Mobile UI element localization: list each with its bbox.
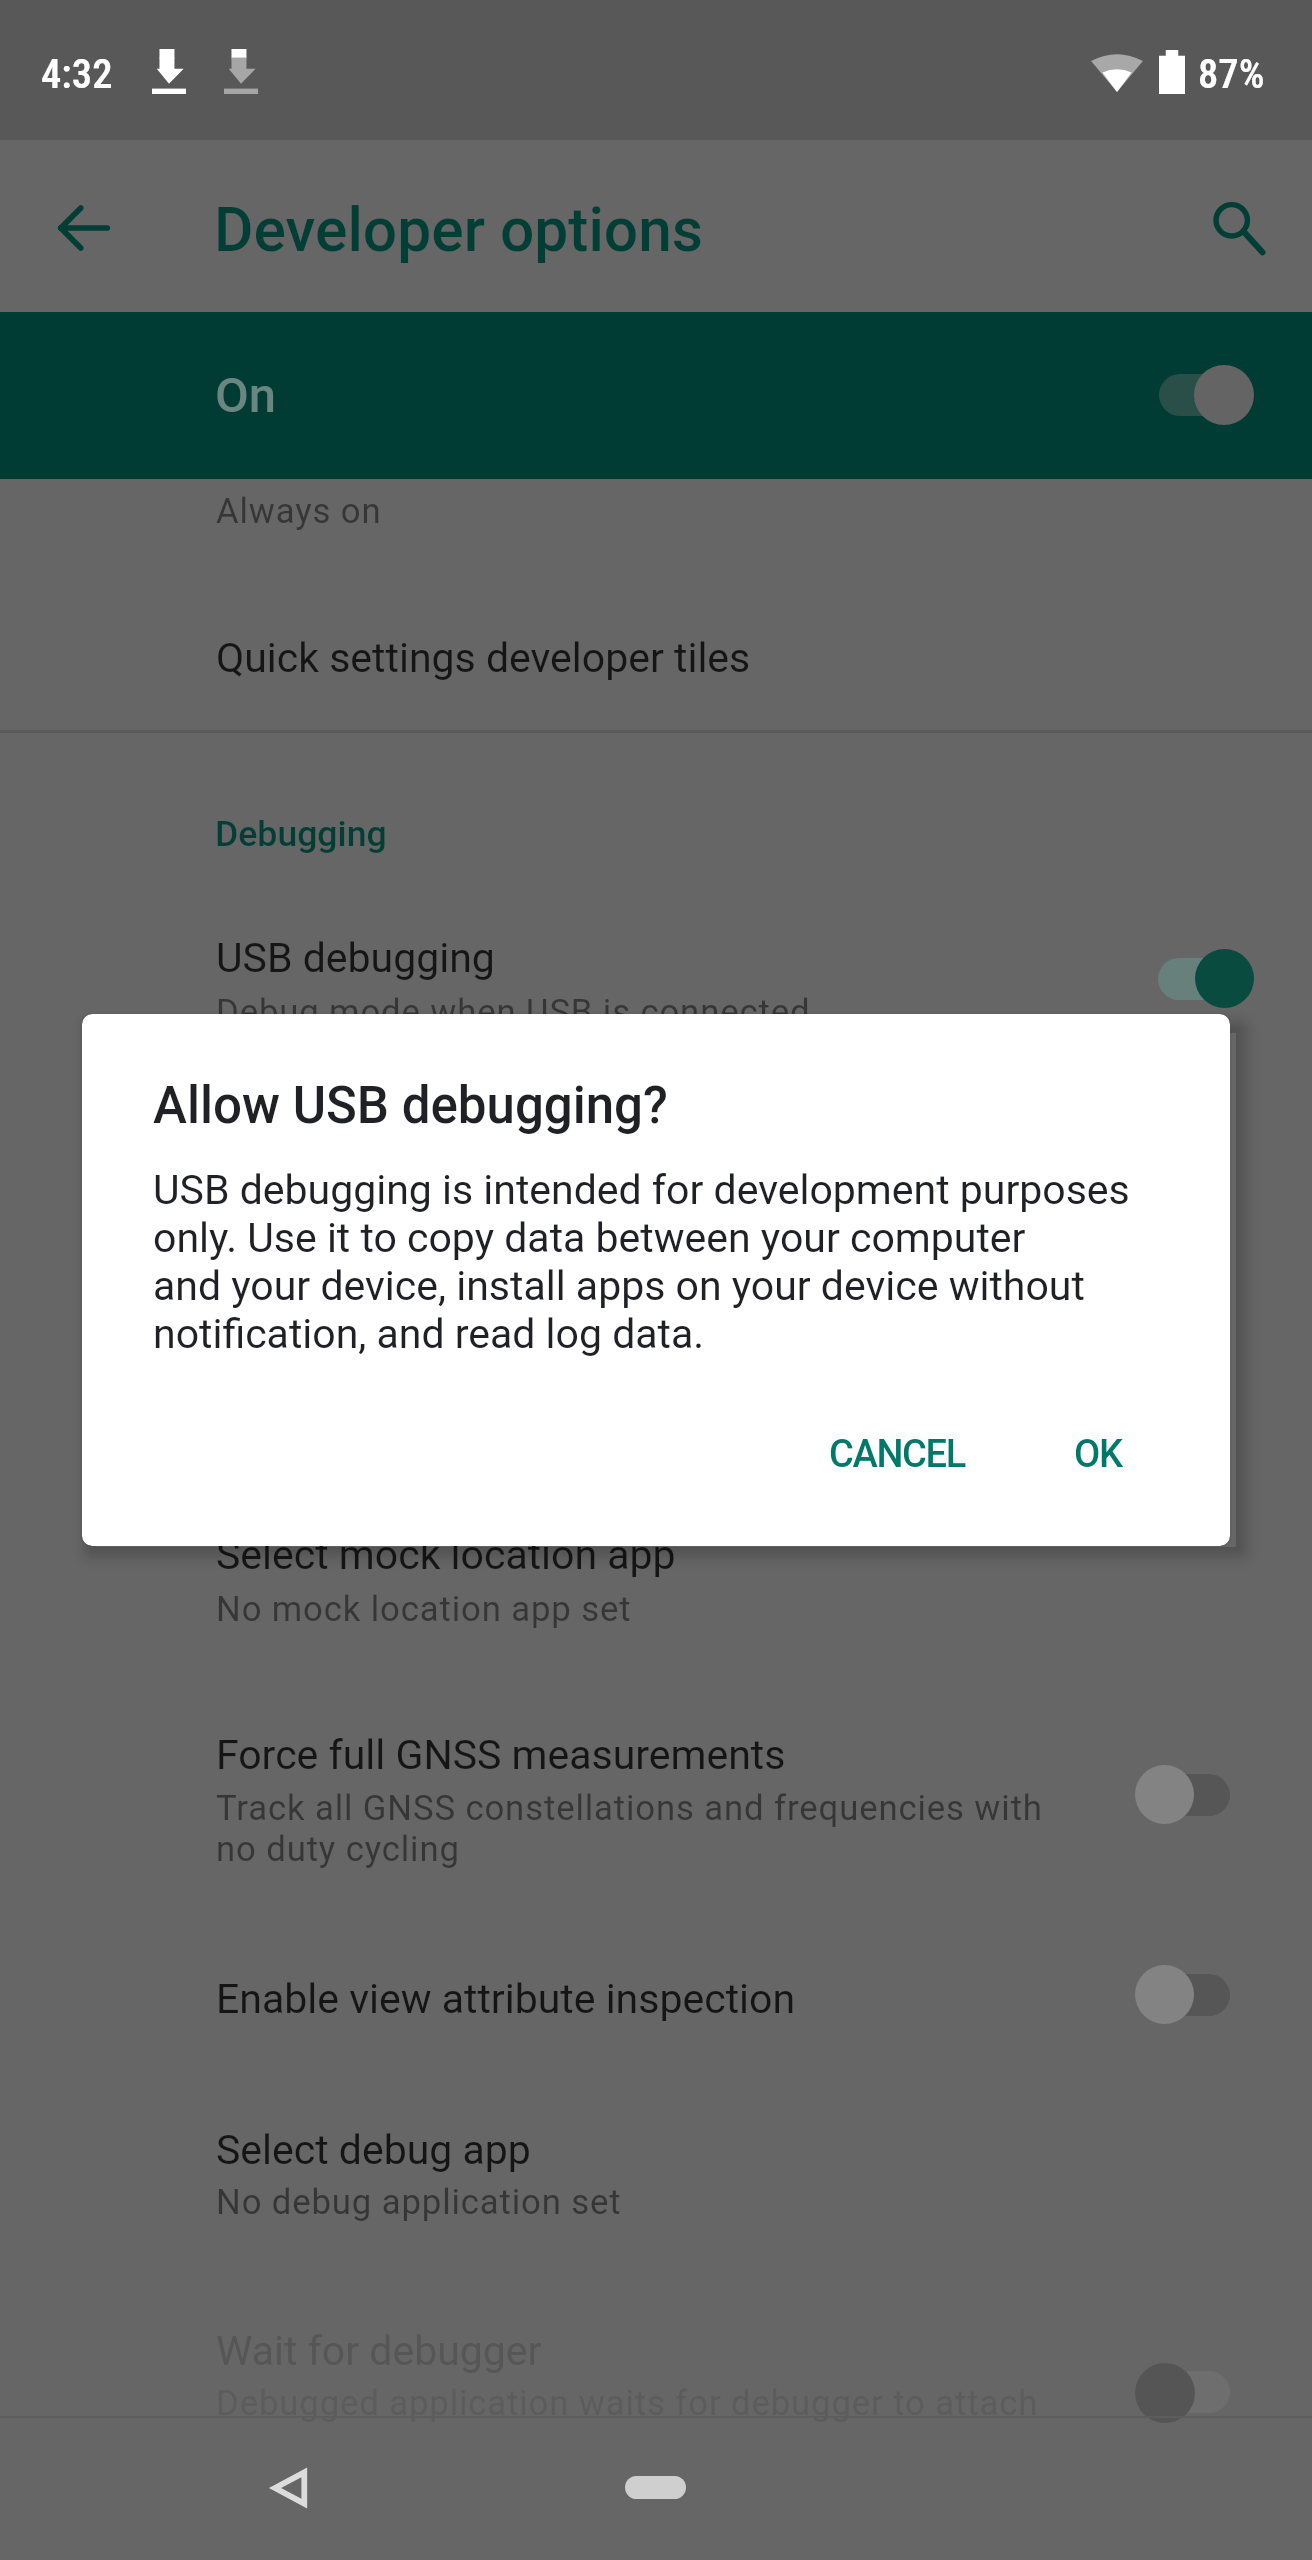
button[interactable]: CANCEL [795,1406,999,1503]
staticText: No mock location app set [216,1589,632,1630]
staticText: USB debugging [216,934,495,982]
staticText: Debugging [215,813,387,855]
staticText: 4:32 [41,50,113,98]
staticText: Debug mode when USB is connected [216,992,811,1033]
button[interactable]: Back [234,2432,346,2544]
staticText: 87% [1198,50,1265,98]
staticText: Allow USB debugging? [153,1076,668,1136]
staticText: Select mock location app [216,1531,676,1579]
staticText: Always on [216,491,382,532]
staticText: Developer options [214,195,704,266]
staticText: OK [1074,1432,1122,1477]
button[interactable]: Search [1176,171,1290,285]
staticText: Select debug app [216,2126,531,2174]
staticText: On [215,367,277,424]
staticText: No debug application set [216,2182,622,2223]
staticText: Force full GNSS measurements [216,1731,786,1779]
staticText: Quick settings developer tiles [216,634,751,682]
button[interactable]: OK [1040,1406,1156,1503]
staticText: Wait for debugger [216,2327,542,2375]
staticText: Debugged application waits for debugger … [216,2383,1039,2424]
staticText: Enable view attribute inspection [216,1975,796,2023]
button[interactable]: Navigate up [27,171,141,285]
staticText: Track all GNSS constellations and freque… [216,1788,1043,1870]
staticText: USB debugging is intended for developmen… [153,1166,1130,1358]
staticText: CANCEL [829,1432,965,1477]
button[interactable]: On [0,312,1312,479]
button[interactable]: Home [625,2476,686,2499]
